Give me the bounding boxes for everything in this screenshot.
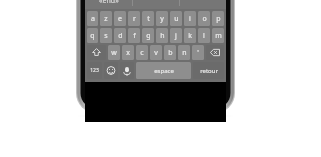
staticText: j	[175, 31, 177, 41]
button[interactable]: k	[184, 28, 196, 43]
button[interactable]: '	[192, 45, 204, 60]
button[interactable]: «end»	[85, 0, 132, 9]
button[interactable]: f	[128, 28, 140, 43]
button[interactable]: d	[114, 28, 126, 43]
staticText: y	[160, 14, 164, 24]
staticText: a	[91, 14, 95, 24]
staticText: u	[174, 14, 179, 24]
staticText: q	[90, 31, 95, 41]
staticText: t	[147, 14, 150, 24]
button[interactable]: Backspace	[206, 45, 224, 60]
button[interactable]: x	[122, 45, 134, 60]
staticText: e	[118, 14, 122, 24]
button[interactable]: v	[150, 45, 162, 60]
button[interactable]: w	[108, 45, 120, 60]
button[interactable]: l	[198, 28, 210, 43]
staticText: espace	[154, 67, 174, 75]
button[interactable]: c	[136, 45, 148, 60]
button[interactable]: u	[170, 11, 182, 26]
staticText: z	[104, 14, 108, 24]
staticText: i	[189, 14, 191, 24]
staticText: c	[140, 48, 144, 58]
button[interactable]: a	[87, 11, 98, 26]
staticText: p	[216, 14, 221, 24]
button[interactable]: Voice input	[120, 62, 134, 79]
staticText: o	[202, 14, 207, 24]
button[interactable]: b	[164, 45, 176, 60]
staticText: b	[168, 48, 173, 58]
staticText: f	[133, 31, 136, 41]
button[interactable]: j	[170, 28, 182, 43]
button[interactable]: i	[184, 11, 196, 26]
staticText: h	[160, 31, 165, 41]
staticText: s	[104, 31, 108, 41]
button[interactable]: q	[87, 28, 98, 43]
staticText: d	[118, 31, 123, 41]
button[interactable]: s	[100, 28, 112, 43]
button[interactable]: o	[198, 11, 210, 26]
button[interactable]: y	[156, 11, 168, 26]
staticText: «end»	[99, 0, 119, 6]
staticText: l	[203, 31, 205, 41]
staticText: k	[188, 31, 192, 41]
button[interactable]: espace	[136, 62, 191, 79]
staticText: g	[146, 31, 151, 41]
button[interactable]: Shift	[87, 45, 106, 60]
button[interactable]: h	[156, 28, 168, 43]
staticText: v	[154, 48, 158, 58]
button[interactable]: r	[128, 11, 140, 26]
button[interactable]: e	[114, 11, 126, 26]
button[interactable]: retour	[193, 62, 224, 79]
staticText: r	[133, 14, 136, 24]
button[interactable]: p	[212, 11, 224, 26]
button[interactable]: Emoji	[104, 62, 118, 79]
staticText: m	[215, 31, 222, 41]
staticText: x	[126, 48, 130, 58]
staticText: w	[111, 48, 117, 58]
button[interactable]: m	[212, 28, 224, 43]
button[interactable]: t	[142, 11, 154, 26]
button[interactable]: 123	[87, 62, 102, 79]
staticText: n	[182, 48, 187, 58]
button[interactable]: z	[100, 11, 112, 26]
staticText: 123	[90, 67, 99, 74]
staticText: '	[197, 48, 199, 58]
button[interactable]: n	[178, 45, 190, 60]
button[interactable]: g	[142, 28, 154, 43]
staticText: retour	[200, 67, 218, 75]
